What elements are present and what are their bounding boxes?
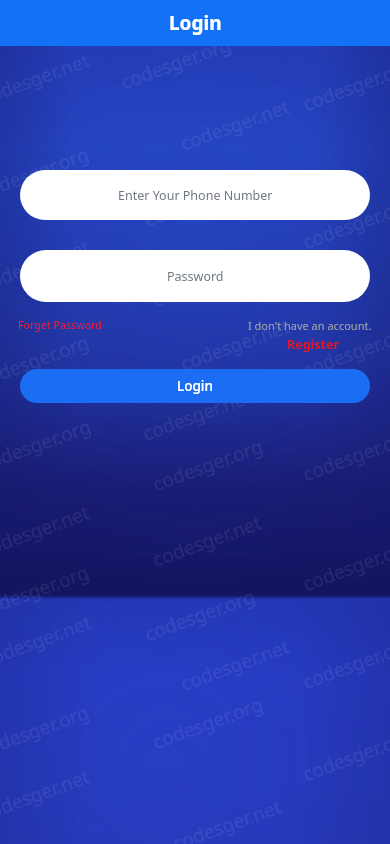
button[interactable]: Register [287, 336, 340, 353]
staticText: codesger.org [149, 691, 267, 755]
staticText: codesger.org [141, 583, 259, 647]
staticText: codesger.org [149, 433, 267, 497]
staticText: codesger.org [299, 191, 390, 255]
staticText: codesger.org [0, 141, 93, 205]
staticText: codesger.org [299, 533, 390, 597]
staticText: codesger.org [149, 249, 267, 313]
staticText: codesger.net [177, 313, 293, 377]
staticText: Register [287, 336, 340, 353]
staticText: codesger.net [0, 609, 95, 673]
staticText: codesger.net [0, 47, 93, 111]
staticText: codesger.net [177, 633, 293, 697]
staticText: Forget Password [18, 318, 102, 332]
staticText: codesger.org [299, 53, 390, 117]
staticText: codesger.org [117, 31, 235, 95]
staticText: codesger.org [299, 319, 390, 383]
staticText: Login [169, 10, 222, 36]
staticText: codesger.net [139, 383, 255, 447]
staticText: codesger.org [0, 699, 93, 763]
staticText: codesger.org [0, 559, 93, 623]
staticText: Enter Your Phone Number [118, 187, 273, 204]
staticText: codesger.net [0, 499, 93, 563]
staticText: codesger.net [169, 793, 285, 844]
staticText: I don't have an account. [248, 318, 372, 333]
staticText: codesger.net [177, 93, 293, 157]
button[interactable]: Forget Password [18, 318, 102, 332]
button[interactable]: Login [20, 369, 370, 403]
staticText: Password [167, 268, 224, 285]
staticText: codesger.net [141, 169, 257, 233]
staticText: codesger.org [299, 631, 390, 695]
staticText: codesger.net [0, 763, 93, 827]
button[interactable]: Enter Your Phone Number [20, 170, 370, 220]
staticText: codesger.org [0, 329, 93, 393]
staticText: codesger.net [149, 509, 265, 573]
staticText: codesger.org [299, 423, 390, 487]
button[interactable]: Password [20, 250, 370, 302]
staticText: codesger.org [0, 413, 95, 477]
staticText: codesger.org [299, 723, 390, 787]
staticText: Login [177, 377, 213, 395]
staticText: codesger.net [0, 233, 93, 297]
